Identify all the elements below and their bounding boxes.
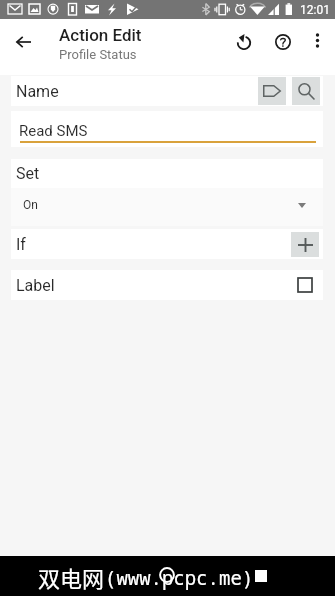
button[interactable]: Name: [11, 76, 323, 106]
staticText: If: [16, 235, 26, 254]
button[interactable]: Tag: [258, 77, 286, 105]
staticText: Name: [16, 82, 59, 101]
button[interactable]: Back: [5, 24, 41, 60]
button[interactable]: Label checkbox: [295, 275, 315, 295]
staticText: Label: [16, 276, 55, 295]
button[interactable]: Add: [291, 232, 319, 257]
staticText: Set: [16, 164, 40, 183]
staticText: Action Edit: [59, 25, 142, 45]
staticText: (www.pcpc.me): [105, 565, 254, 591]
button[interactable]: If: [11, 229, 323, 259]
button[interactable]: More options: [301, 24, 333, 56]
staticText: Read SMS: [19, 122, 88, 140]
staticText: 双电网: [38, 561, 105, 593]
button[interactable]: Set: [11, 159, 323, 188]
button[interactable]: Read SMS: [11, 111, 323, 147]
staticText: Profile Status: [59, 47, 137, 62]
staticText: 12:01: [300, 3, 330, 17]
button[interactable]: Help: [265, 24, 301, 60]
button[interactable]: On: [11, 188, 323, 226]
button[interactable]: Search: [292, 77, 320, 105]
button[interactable]: Undo: [226, 24, 262, 60]
button[interactable]: Label: [11, 270, 323, 300]
staticText: On: [23, 198, 38, 212]
